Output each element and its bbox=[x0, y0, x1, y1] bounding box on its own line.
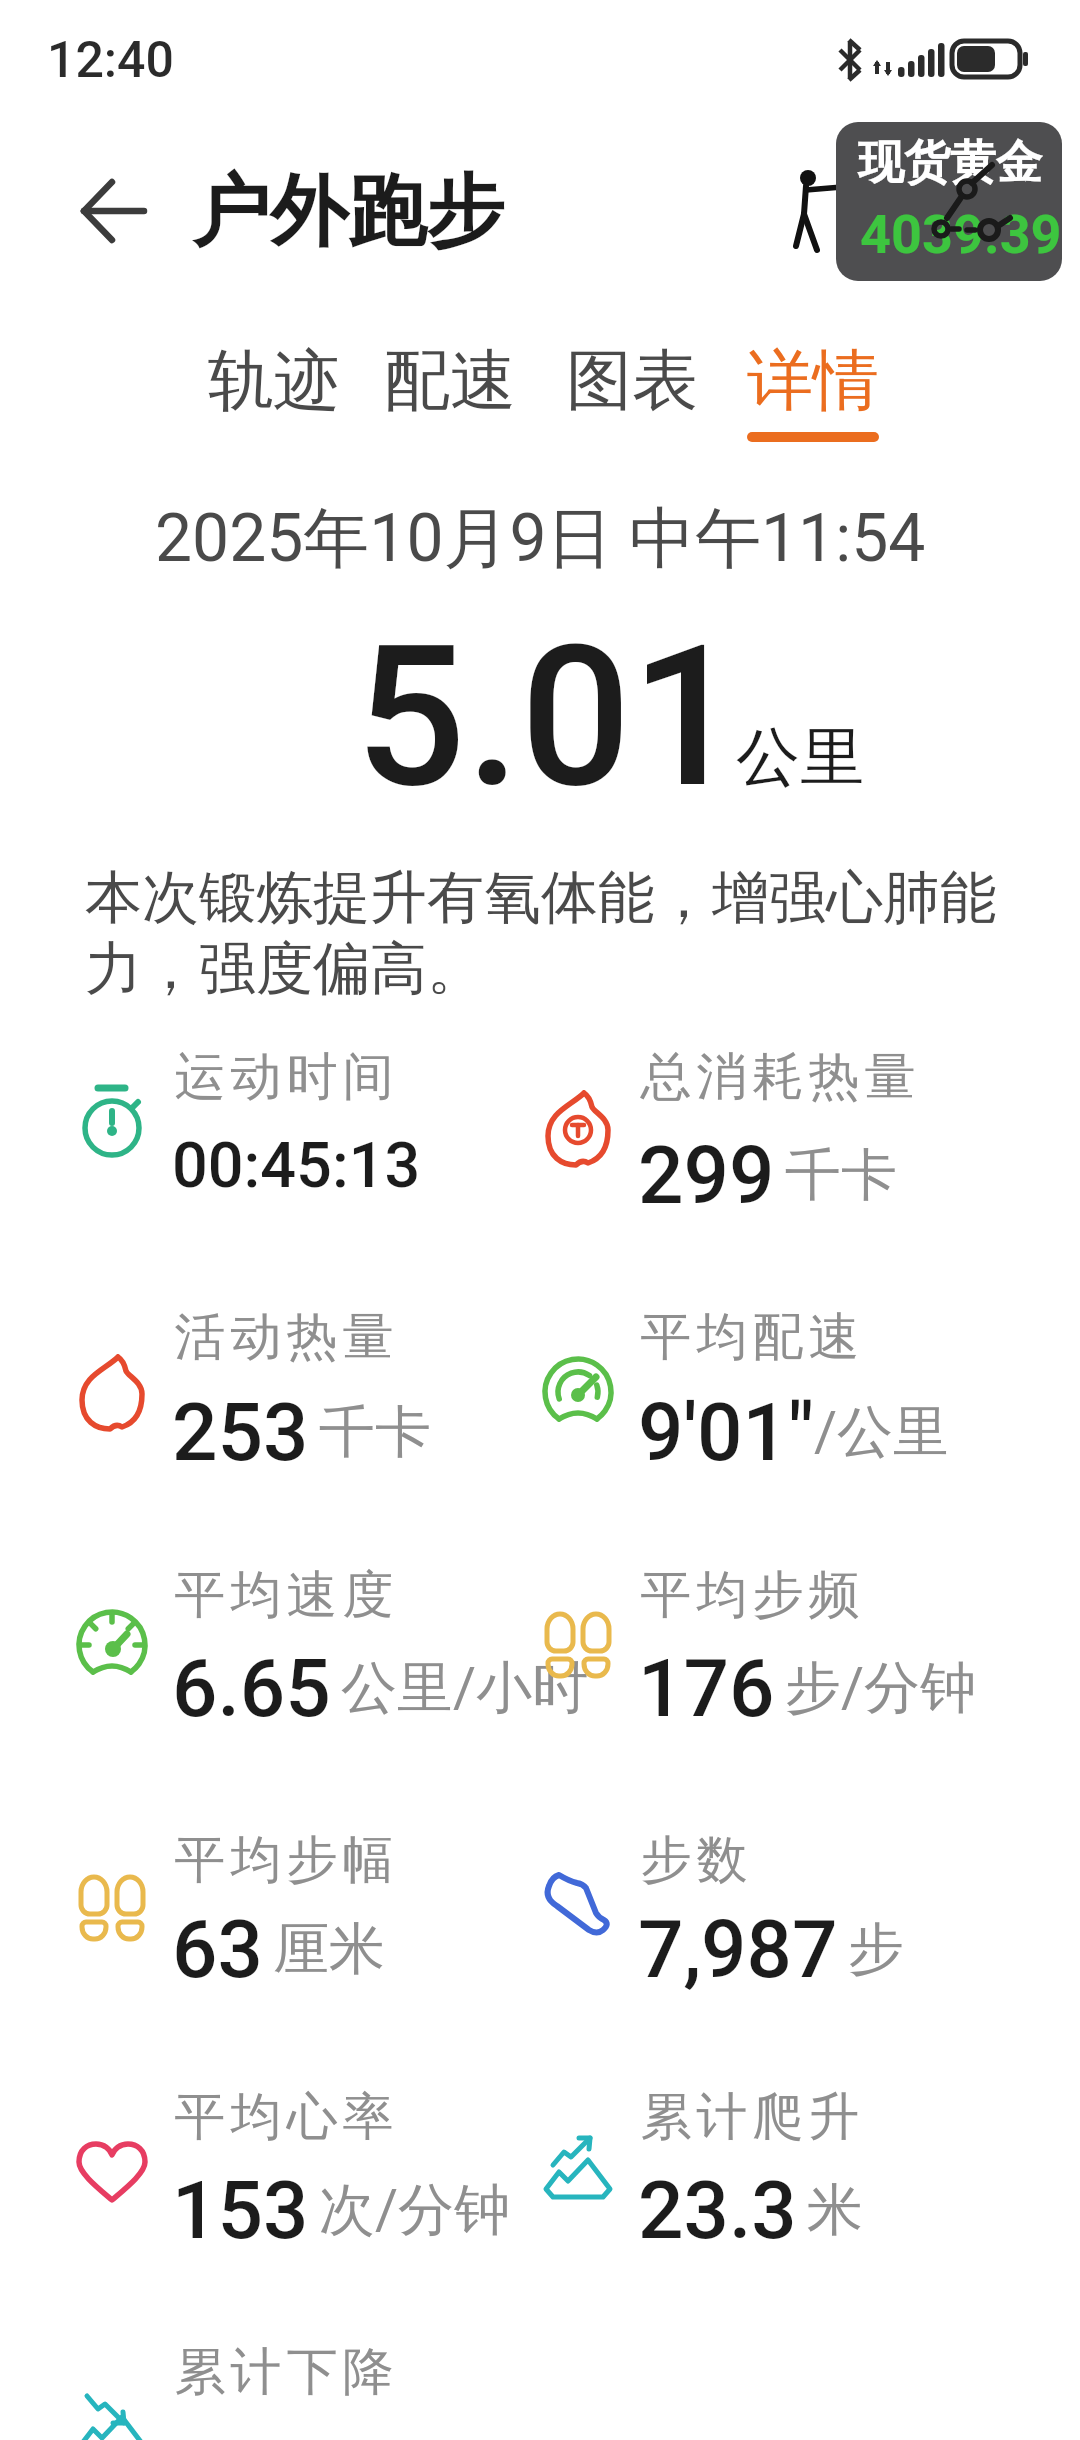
staticText: 176 bbox=[638, 1642, 775, 1736]
staticText: 4039.39 bbox=[860, 203, 1062, 266]
staticText: 活动热量 bbox=[172, 1305, 396, 1369]
staticText: 平均步幅 bbox=[172, 1828, 396, 1892]
staticText: 7,987 bbox=[638, 1903, 838, 1997]
staticText: 5.01 bbox=[355, 603, 742, 832]
button[interactable] bbox=[836, 122, 1062, 281]
staticText: 户外跑步 bbox=[192, 163, 504, 261]
button[interactable]: 详情 bbox=[743, 330, 883, 430]
staticText: 千卡 bbox=[319, 1397, 431, 1468]
button[interactable]: 轨迹 bbox=[204, 330, 344, 430]
staticText: 平均步频 bbox=[638, 1563, 862, 1627]
staticText: 步 bbox=[848, 1914, 904, 1985]
staticText: 253 bbox=[172, 1386, 309, 1480]
staticText: /公里 bbox=[814, 1397, 950, 1468]
staticText: 平均配速 bbox=[638, 1305, 862, 1369]
staticText: 299 bbox=[638, 1129, 775, 1223]
staticText: 12:40 bbox=[47, 31, 174, 90]
button[interactable]: 图表 bbox=[562, 330, 702, 430]
staticText: 千卡 bbox=[785, 1140, 897, 1211]
staticText: 平均速度 bbox=[172, 1563, 396, 1627]
staticText: 153 bbox=[172, 2164, 309, 2258]
staticText: 9'01" bbox=[638, 1386, 814, 1480]
staticText: 步/分钟 bbox=[785, 1653, 977, 1724]
staticText: 详情 bbox=[747, 339, 879, 422]
staticText: 总消耗热量 bbox=[638, 1045, 918, 1109]
staticText: 6.65 bbox=[172, 1642, 331, 1736]
staticText: 00:45:13 bbox=[172, 1129, 421, 1203]
staticText: 平均心率 bbox=[172, 2085, 396, 2149]
staticText: 图表 bbox=[566, 339, 698, 422]
staticText: 步数 bbox=[638, 1828, 750, 1892]
button[interactable] bbox=[70, 166, 160, 256]
staticText: 厘米 bbox=[273, 1914, 385, 1985]
staticText: 运动时间 bbox=[172, 1045, 396, 1109]
staticText: 23.3 bbox=[638, 2164, 797, 2258]
staticText: 公里/小时 bbox=[341, 1653, 589, 1724]
staticText: 配速 bbox=[384, 339, 516, 422]
staticText: 63 bbox=[172, 1903, 263, 1997]
staticText: 本次锻炼提升有氧体能，增强心肺能力，强度偏高。 bbox=[85, 862, 1020, 1005]
staticText: 轨迹 bbox=[208, 339, 340, 422]
staticText: 次/分钟 bbox=[319, 2175, 511, 2246]
staticText: 2025年10月9日 中午11:54 bbox=[155, 497, 926, 580]
staticText: 累计下降 bbox=[172, 2340, 396, 2404]
staticText: 公里 bbox=[736, 717, 864, 798]
staticText: 米 bbox=[807, 2175, 863, 2246]
button[interactable]: 配速 bbox=[380, 330, 520, 430]
staticText: 现货黄金 bbox=[858, 134, 1042, 192]
staticText: 累计爬升 bbox=[638, 2085, 862, 2149]
